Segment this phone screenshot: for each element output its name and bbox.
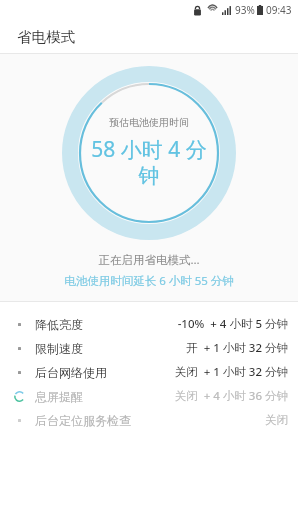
staticText: 后台网络使用 xyxy=(35,365,107,380)
staticText: 开 + 1 小时 32 分钟 xyxy=(186,340,288,356)
staticText: 后台定位服务检查 xyxy=(35,413,131,428)
button[interactable]: Loading xyxy=(0,384,298,408)
button[interactable]: 限制速度 xyxy=(0,336,298,360)
staticText: 93% xyxy=(235,3,255,17)
staticText: 省电模式 xyxy=(17,28,75,46)
staticText: 降低亮度 xyxy=(35,317,83,332)
other: Loading xyxy=(14,391,25,402)
staticText: 09:43 xyxy=(266,3,292,17)
staticText: -10% + 4 小时 5 分钟 xyxy=(177,316,288,332)
button[interactable]: 后台定位服务检查 xyxy=(0,408,298,432)
staticText: 正在启用省电模式… xyxy=(98,252,200,268)
button[interactable]: 降低亮度 xyxy=(0,312,298,336)
button[interactable]: 后台网络使用 xyxy=(0,360,298,384)
staticText: 关闭 + 1 小时 32 分钟 xyxy=(174,364,288,380)
staticText: 58 小时 4 分钟 xyxy=(91,135,207,190)
staticText: 关闭 + 4 小时 36 分钟 xyxy=(174,388,288,404)
staticText: 限制速度 xyxy=(35,341,83,356)
staticText: 息屏提醒 xyxy=(35,389,83,404)
staticText: 预估电池使用时间 xyxy=(109,116,189,129)
staticText: 关闭 xyxy=(265,413,288,427)
staticText: 电池使用时间延长 6 小时 55 分钟 xyxy=(64,273,234,289)
